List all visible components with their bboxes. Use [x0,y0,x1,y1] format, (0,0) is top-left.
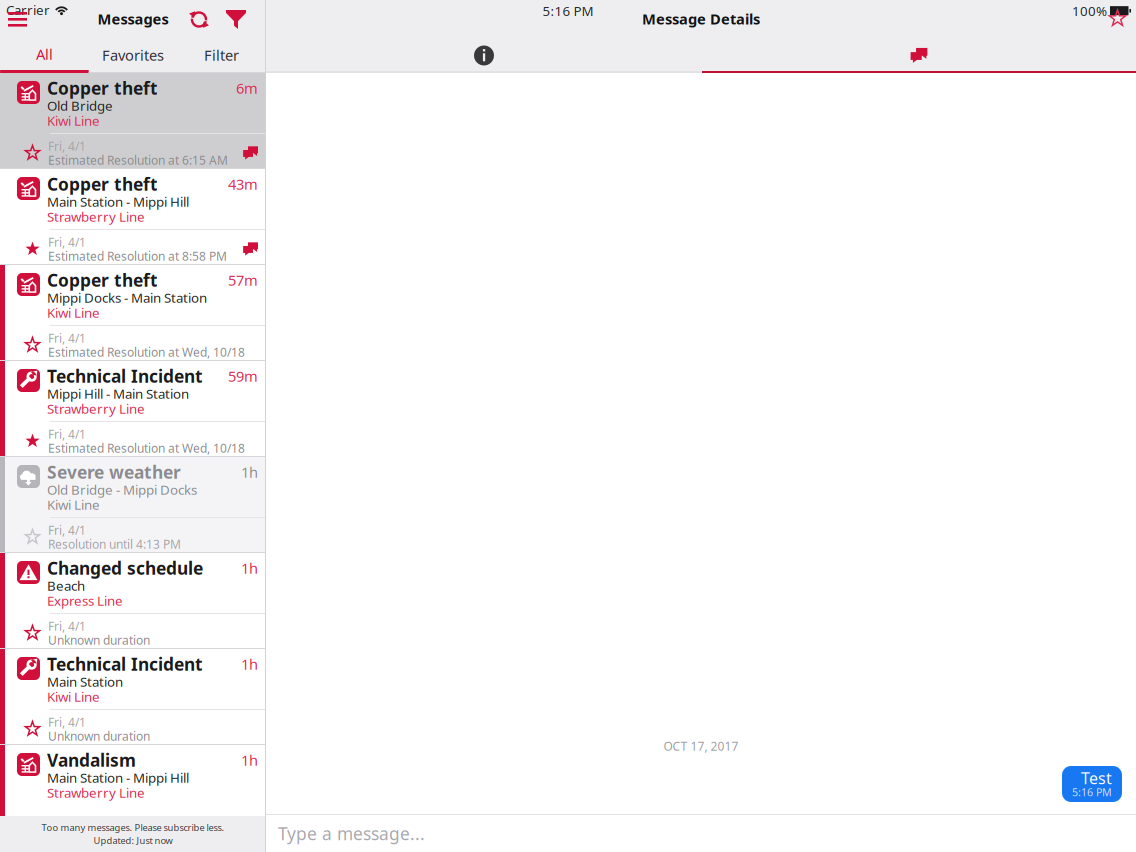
staticText: Resolution until 4:13 PM [48,536,181,552]
staticText: Messages [97,9,168,28]
button[interactable]: Unfavorite [25,241,40,256]
staticText: Type a message... [278,822,425,845]
staticText: 5:16 PM [1072,785,1112,799]
staticText: Kiwi Line [47,688,100,705]
staticText: Kiwi Line [47,304,100,321]
button[interactable]: Details [266,38,702,73]
staticText: Mippi Hill - Main Station [47,385,189,402]
button[interactable]: Menu [8,12,26,25]
staticText: Fri, 4/1 [48,234,86,250]
staticText: Test [1081,767,1112,789]
staticText: Main Station - Mippi Hill [47,193,189,210]
staticText: Vandalism [47,748,136,771]
button[interactable]: Technical Incident [0,649,266,744]
staticText: Unknown duration [48,632,150,648]
staticText: Mippi Docks - Main Station [47,289,207,306]
button[interactable]: Copper theft [0,169,266,264]
staticText: Changed schedule [47,556,203,579]
staticText: Fri, 4/1 [48,522,86,538]
staticText: Fri, 4/1 [48,330,86,346]
staticText: Too many messages. Please subscribe less… [41,821,224,834]
staticText: Copper theft [47,172,158,195]
staticText: Express Line [47,592,123,609]
button[interactable]: Favorites [89,38,177,73]
button[interactable]: Filter [226,9,246,29]
staticText: Copper theft [47,268,158,291]
staticText: Beach [47,577,85,594]
button[interactable]: Favorite [25,529,40,544]
button[interactable]: Changed schedule [0,553,266,648]
staticText: Fri, 4/1 [48,618,86,634]
button[interactable]: Vandalism [0,745,266,839]
staticText: Main Station - Mippi Hill [47,769,189,786]
staticText: Favorites [102,45,164,65]
staticText: 1h [241,558,258,578]
staticText: Severe weather [47,460,181,483]
staticText: 5:16 PM [542,2,593,20]
button[interactable]: Favorite [1109,10,1126,27]
button[interactable]: Filter [177,38,266,73]
staticText: Main Station [47,673,123,690]
staticText: 1h [241,462,258,482]
staticText: Estimated Resolution at Wed, 10/18 [48,440,245,456]
button[interactable]: Copper theft [0,73,266,168]
staticText: 1h [241,750,258,770]
staticText: Strawberry Line [47,784,145,801]
button[interactable]: Technical Incident [0,361,266,456]
button[interactable]: Copper theft [0,265,266,360]
staticText: Technical Incident [47,652,203,675]
staticText: Fri, 4/1 [48,426,86,442]
staticText: 57m [228,270,258,290]
staticText: Copper theft [47,76,158,99]
staticText: All [36,44,53,64]
button[interactable]: Favorite [25,721,40,736]
staticText: 43m [228,174,258,194]
button[interactable]: Severe weather [0,457,266,552]
staticText: Strawberry Line [47,208,145,225]
staticText: Kiwi Line [47,112,100,129]
staticText: Updated: Just now [93,834,172,847]
staticText: Estimated Resolution at Wed, 10/18 [48,344,245,360]
button[interactable]: Favorite [25,337,40,352]
button[interactable]: Unfavorite [25,433,40,448]
staticText: 100% [1072,2,1107,20]
staticText: Fri, 4/1 [48,138,86,154]
staticText: Estimated Resolution at 6:15 AM [48,152,228,168]
staticText: Kiwi Line [47,496,100,513]
staticText: Estimated Resolution at 8:58 PM [48,248,227,264]
staticText: Strawberry Line [47,400,145,417]
staticText: Old Bridge - Mippi Docks [47,481,197,498]
button[interactable]: Refresh [189,9,209,30]
staticText: Message Details [642,9,760,28]
staticText: Filter [204,45,239,65]
staticText: 59m [228,366,258,386]
staticText: Technical Incident [47,364,203,387]
staticText: Fri, 4/1 [48,714,86,730]
staticText: Carrier [6,1,50,19]
button[interactable]: Messages [702,38,1136,73]
button[interactable]: All [0,38,89,73]
staticText: 1h [241,654,258,674]
staticText: 6m [236,78,258,98]
button[interactable]: Favorite [25,145,40,160]
staticText: Unknown duration [48,728,150,744]
button[interactable]: Favorite [25,625,40,640]
staticText: OCT 17, 2017 [663,738,738,754]
staticText: Old Bridge [47,97,113,114]
